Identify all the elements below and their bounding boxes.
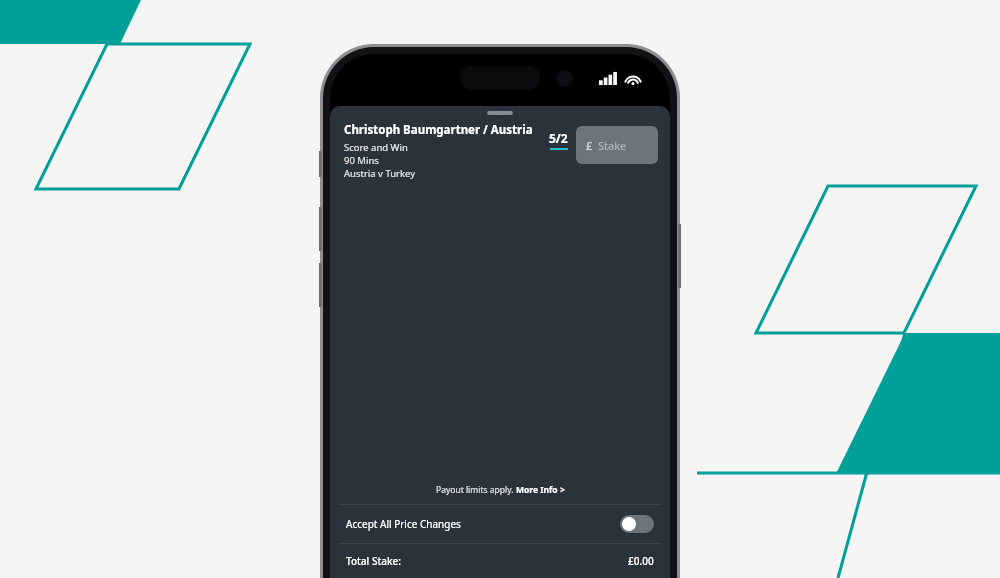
button[interactable]: Accept All Price Changes [330, 505, 670, 543]
staticText: More Info > [516, 484, 565, 496]
staticText: Stake [598, 138, 627, 153]
button[interactable]: £ [576, 126, 658, 164]
staticText: 5/2 [549, 130, 568, 146]
staticText: 90 Mins [344, 154, 379, 167]
staticText: £ [586, 138, 593, 153]
staticText: Accept All Price Changes [346, 517, 620, 531]
staticText: Total Stake: [346, 554, 628, 568]
staticText: £0.00 [628, 554, 654, 568]
staticText: Austria v Turkey [344, 167, 416, 180]
button[interactable]: 5/2 [549, 130, 568, 150]
button[interactable]: Payout limits apply. [436, 484, 565, 496]
staticText: Payout limits apply. [436, 484, 516, 496]
staticText: Christoph Baumgartner / Austria [344, 122, 533, 138]
staticText: Score and Win [344, 141, 408, 154]
